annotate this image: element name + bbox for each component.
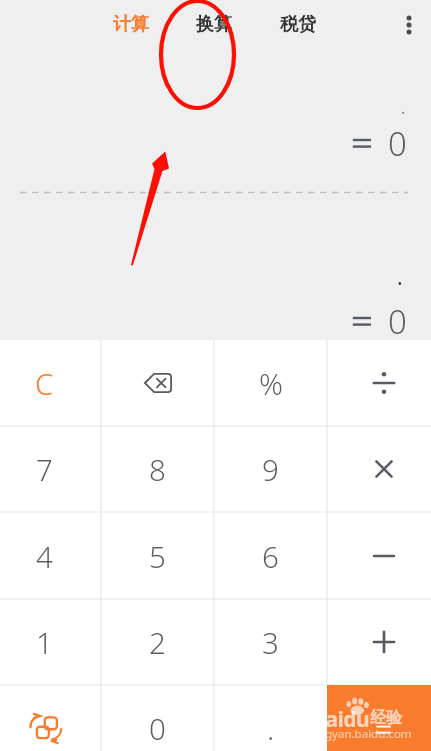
staticText: 1 [36, 622, 53, 662]
button[interactable]: = [327, 685, 431, 751]
staticText: 9 [262, 449, 279, 489]
staticText: 税贷 [280, 13, 316, 36]
staticText: 0 [388, 299, 407, 344]
button[interactable]: Plus [327, 599, 431, 685]
staticText: 换算 [196, 13, 232, 36]
button[interactable]: 3 [214, 599, 327, 685]
staticText: 经验 [370, 708, 402, 728]
button[interactable]: 8 [101, 426, 214, 512]
staticText: 4 [36, 536, 53, 576]
button[interactable]: % [214, 340, 327, 426]
staticText: . [401, 96, 406, 119]
button[interactable]: 2 [101, 599, 214, 685]
staticText: % [259, 363, 283, 403]
staticText: 5 [149, 536, 166, 576]
button[interactable]: 5 [101, 512, 214, 599]
button[interactable]: Divide [327, 340, 431, 426]
staticText: . [397, 263, 403, 292]
staticText: C [35, 364, 54, 403]
button[interactable]: Minus [327, 512, 431, 599]
button[interactable]: . [214, 685, 327, 751]
button[interactable]: Backspace [101, 340, 214, 426]
staticText: Baidu [312, 705, 370, 734]
staticText: 2 [149, 622, 166, 662]
staticText: 0 [388, 121, 407, 166]
button[interactable]: 7 [0, 426, 101, 512]
staticText: 6 [262, 536, 279, 576]
button[interactable]: 4 [0, 512, 101, 599]
staticText: 计算 [113, 13, 149, 36]
button[interactable]: 9 [214, 426, 327, 512]
button[interactable]: 1 [0, 599, 101, 685]
button[interactable]: 换算 [196, 0, 232, 48]
button[interactable]: 税贷 [280, 0, 316, 48]
staticText: 0 [149, 708, 166, 748]
staticText: 3 [262, 622, 279, 662]
staticText: 7 [36, 449, 53, 489]
staticText: 8 [149, 449, 166, 489]
staticText: jingyan.baidu.com [312, 726, 412, 742]
staticText: . [267, 708, 275, 748]
staticText: = [375, 708, 393, 749]
button[interactable]: Multiply [327, 426, 431, 512]
button[interactable]: 计算 [113, 0, 149, 48]
button[interactable]: More options [385, 0, 431, 48]
button[interactable]: 0 [101, 685, 214, 751]
button[interactable]: Unit conversion [0, 685, 101, 751]
button[interactable]: C [0, 340, 101, 426]
button[interactable]: 6 [214, 512, 327, 599]
